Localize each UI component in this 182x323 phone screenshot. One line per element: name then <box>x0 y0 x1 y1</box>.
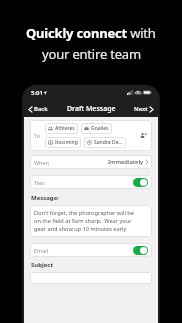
button[interactable]: Sandra De... <box>84 137 126 148</box>
staticText: When <box>34 159 50 166</box>
button[interactable]: Athletes <box>45 123 78 134</box>
staticText: 5:01 <box>31 89 43 97</box>
button[interactable]: Text <box>30 175 152 189</box>
button[interactable]: When <box>30 155 152 169</box>
button[interactable] <box>30 272 152 284</box>
other: Email toggle on <box>133 246 148 255</box>
staticText: gear and show up 10 minutes early <box>34 225 127 233</box>
staticText: Sandra De... <box>94 139 123 146</box>
button[interactable]: Add recipient <box>139 131 148 140</box>
button[interactable]: Goalies <box>81 123 112 134</box>
staticText: Draft Message <box>67 104 116 114</box>
button[interactable]: Email <box>30 243 152 257</box>
staticText: Subject <box>31 261 54 269</box>
other: Text toggle on <box>133 178 148 187</box>
staticText: Text <box>34 179 45 186</box>
staticText: Goalies <box>91 125 109 132</box>
staticText: with <box>127 24 156 42</box>
staticText: Message: <box>31 194 59 202</box>
staticText: Immediately <box>108 158 144 166</box>
staticText: Athletes <box>55 125 75 132</box>
button[interactable]: Next <box>130 102 158 116</box>
staticText: Incoming <box>55 139 78 146</box>
staticText: Quickly connect <box>26 24 127 42</box>
button[interactable]: Don't forget, the photographer will be <box>30 205 152 237</box>
button[interactable]: Back <box>24 102 52 116</box>
staticText: your entire team <box>42 45 141 63</box>
staticText: Email <box>34 247 49 254</box>
staticText: Back <box>34 105 48 113</box>
staticText: To <box>34 132 41 139</box>
staticText: Next <box>134 105 148 113</box>
button[interactable]: Incoming <box>45 137 81 148</box>
staticText: on the field at 9am sharp. Wear your <box>34 217 132 225</box>
staticText: Don't forget, the photographer will be <box>34 209 134 217</box>
